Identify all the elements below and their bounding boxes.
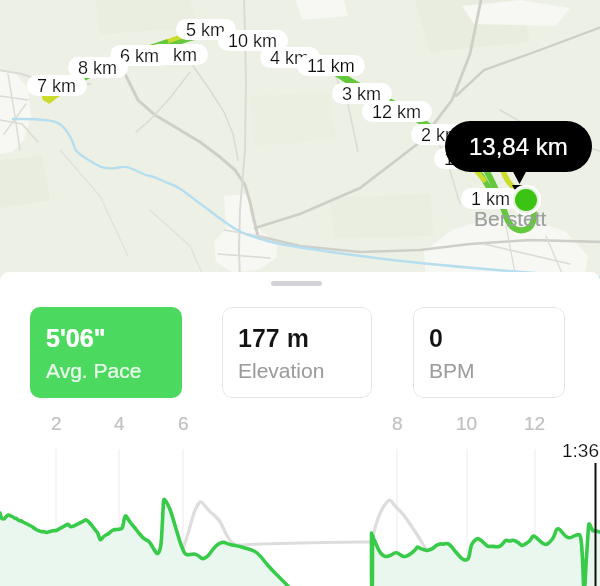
staticText: 177 m	[238, 324, 309, 352]
staticText: 5 km	[186, 20, 226, 40]
staticText: 12 km	[372, 102, 422, 122]
staticText: 1 km	[471, 189, 511, 209]
button[interactable]: 5 km	[186, 19, 226, 40]
button[interactable]: 4 km	[270, 47, 310, 68]
staticText: 2 km	[421, 125, 461, 145]
staticText: 10 km	[228, 31, 278, 51]
staticText: 4 km	[270, 48, 310, 68]
staticText: Elevation	[238, 359, 325, 382]
button[interactable]: 12 km	[372, 101, 422, 122]
staticText: 5'06"	[46, 324, 106, 352]
staticText: 13 km	[444, 149, 494, 169]
staticText: BPM	[429, 359, 475, 382]
button[interactable]: 13 km	[444, 148, 494, 169]
staticText: Berstett	[474, 207, 547, 230]
staticText: 7 km	[37, 76, 77, 96]
staticText: 6 km	[120, 46, 160, 66]
button[interactable]: 13,84 km	[445, 121, 592, 172]
button[interactable]: 10 km	[228, 30, 278, 51]
button[interactable]: 1 km	[471, 188, 511, 209]
staticText: 10	[456, 413, 478, 434]
staticText: 6	[178, 413, 189, 434]
button[interactable]: Route map	[0, 0, 600, 280]
button[interactable]: 8 km	[78, 57, 118, 78]
staticText: 11 km	[307, 56, 355, 76]
staticText: 8	[392, 413, 403, 434]
button[interactable]: 0	[413, 307, 565, 398]
staticText: Avg. Pace	[46, 359, 142, 382]
button[interactable]: 6 km	[120, 45, 160, 66]
button[interactable]: 5'06"	[30, 307, 182, 398]
staticText: 3 km	[342, 84, 382, 104]
staticText: 12	[524, 413, 546, 434]
staticText: 4	[114, 413, 125, 434]
staticText: 13,84 km	[469, 133, 568, 160]
button[interactable]: 9 km	[158, 44, 198, 65]
button[interactable]: 2 km	[421, 124, 461, 145]
staticText: 2	[51, 413, 62, 434]
staticText: 9 km	[158, 45, 198, 65]
staticText: 1:36	[562, 440, 599, 461]
staticText: 0	[429, 324, 443, 352]
button[interactable]: 177 m	[222, 307, 372, 398]
button[interactable]: 7 km	[37, 75, 77, 96]
button[interactable]: 11 km	[307, 55, 355, 76]
button[interactable]: 3 km	[342, 83, 382, 104]
staticText: 8 km	[78, 58, 118, 78]
